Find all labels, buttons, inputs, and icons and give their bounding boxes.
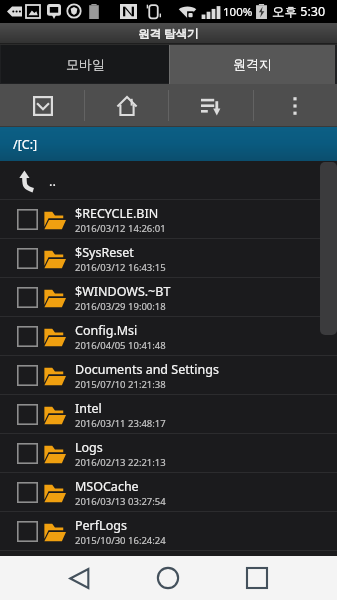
staticText: PerfLogs <box>75 517 127 534</box>
staticText: Documents and Settings <box>75 361 219 378</box>
button[interactable]: $SysReset <box>0 239 337 278</box>
staticText: 2016/04/05 10:41:48 <box>75 339 166 352</box>
staticText: 2016/03/29 19:00:18 <box>75 300 166 313</box>
button[interactable]: More options <box>253 84 337 127</box>
staticText: $SysReset <box>75 244 134 261</box>
button[interactable]: Back <box>39 556 119 600</box>
staticText: 2016/03/13 03:27:54 <box>75 495 166 508</box>
button[interactable]: .. <box>0 161 337 200</box>
button[interactable]: $WINDOWS.~BT <box>0 278 337 317</box>
staticText: 원격지 <box>233 56 272 72</box>
staticText: 원격 탐색기 <box>138 26 199 42</box>
button[interactable]: 모바일 <box>1 44 169 83</box>
button[interactable]: Sort <box>169 84 253 127</box>
button[interactable]: Logs <box>0 434 337 473</box>
button[interactable]: Recents <box>217 556 297 600</box>
button[interactable]: Config.Msi <box>0 317 337 356</box>
staticText: Config.Msi <box>75 322 138 339</box>
staticText: 2015/07/10 21:21:38 <box>75 378 166 391</box>
button[interactable]: /[C:] <box>0 127 337 161</box>
staticText: 2016/03/12 16:43:15 <box>75 261 166 274</box>
staticText: 2016/02/13 22:21:13 <box>75 456 166 469</box>
button[interactable]: 원격지 <box>169 44 335 84</box>
staticText: 모바일 <box>66 56 105 72</box>
staticText: 오후 5:30 <box>272 3 326 20</box>
staticText: 2016/03/11 23:48:17 <box>75 417 166 430</box>
staticText: 2016/03/12 14:26:01 <box>75 222 166 235</box>
button[interactable]: Intel <box>0 395 337 434</box>
button[interactable]: Documents and Settings <box>0 356 337 395</box>
button[interactable]: MSOCache <box>0 473 337 512</box>
button[interactable]: Home <box>128 556 208 600</box>
staticText: $RECYCLE.BIN <box>75 205 159 222</box>
staticText: 2015/10/30 16:24:24 <box>75 534 166 547</box>
staticText: /[C:] <box>13 136 38 153</box>
staticText: Intel <box>75 400 102 417</box>
button[interactable]: Home <box>85 84 169 127</box>
button[interactable]: $RECYCLE.BIN <box>0 200 337 239</box>
staticText: .. <box>49 172 56 190</box>
staticText: MSOCache <box>75 478 139 495</box>
staticText: Logs <box>75 439 103 456</box>
button[interactable]: Select <box>0 84 85 127</box>
button[interactable]: PerfLogs <box>0 512 337 551</box>
staticText: $WINDOWS.~BT <box>75 283 171 300</box>
staticText: 100% <box>223 4 253 20</box>
